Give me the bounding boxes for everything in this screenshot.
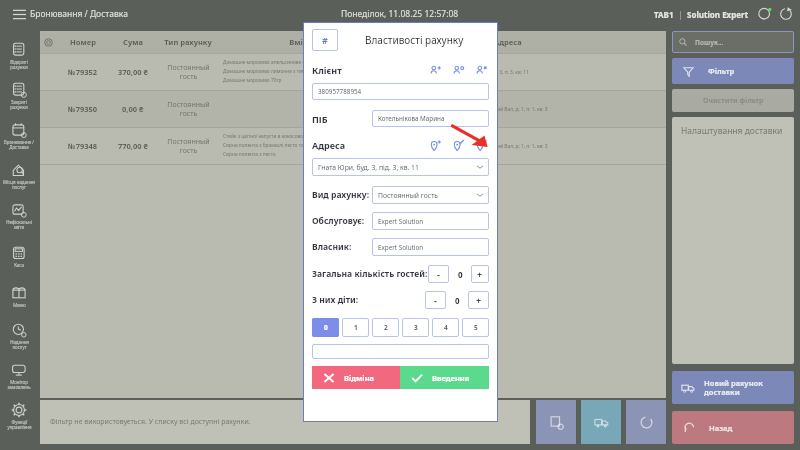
staticText: Гната Юри, буд. 3, під. 3, кв. 11 (318, 163, 477, 172)
staticText: 370,00 ₴ (118, 67, 148, 77)
button[interactable]: Котельнікова Марина (372, 110, 489, 127)
button[interactable]: Функції управління (0, 396, 38, 436)
button[interactable]: Decrease (425, 291, 446, 309)
staticText: Домашнє морозиво апельсинове з чилі 70.. (223, 59, 364, 66)
button[interactable]: 3 (402, 318, 429, 337)
staticText: 2 (384, 323, 388, 332)
staticText: Котельнікова Марина (378, 114, 445, 123)
button[interactable]: Expert Solution (372, 212, 489, 230)
staticText: Expert Solution (378, 243, 424, 252)
staticText: Функції управління (7, 419, 32, 430)
button[interactable]: Add client (427, 62, 443, 78)
staticText: 0 (324, 323, 328, 332)
button[interactable]: Місця надання послуг (0, 156, 38, 196)
staticText: Вид рахунку: (312, 189, 370, 201)
button[interactable]: Refresh (777, 5, 795, 23)
button[interactable]: Відкриті рахунки (0, 36, 38, 76)
staticText: Новенькі Район солом'янський, ул: Яросла… (386, 143, 549, 150)
staticText: Бронювання / Доставка (30, 8, 128, 20)
button[interactable]: Expert Solution (372, 238, 489, 256)
staticText: Район солом'янський, ул: Гната Юри, д: 3… (386, 69, 549, 76)
button[interactable]: Decrease (428, 265, 449, 283)
staticText: Новий рахунок доставки (704, 378, 763, 398)
button[interactable]: Назад (672, 411, 794, 444)
staticText: Введення (432, 373, 470, 383)
button[interactable]: 1 (342, 318, 369, 337)
staticText: Стейк з цвітної капусти в кокосовому соу… (223, 133, 364, 140)
staticText: Нефіскальні звіти (6, 219, 32, 230)
staticText: # (322, 34, 328, 46)
staticText: + (476, 294, 482, 306)
staticText: Власник: (312, 241, 352, 253)
staticText: Понеділок, 11.08.25 12:57:08 (341, 8, 459, 20)
staticText: №79352 (68, 67, 98, 77)
button[interactable]: 4 (432, 318, 459, 337)
staticText: Номер (56, 37, 110, 47)
button[interactable]: Гната Юри, буд. 3, під. 3, кв. 11 (312, 158, 489, 176)
button[interactable]: Закриті рахунки (0, 76, 38, 116)
button[interactable]: №79348 (40, 128, 666, 164)
staticText: Відкриті рахунки (10, 59, 28, 70)
button[interactable]: Новий рахунок доставки (672, 371, 794, 404)
button[interactable]: Menu (6, 1, 32, 27)
button[interactable]: Очистити фільтр (672, 89, 794, 112)
staticText: Постоянный гость (167, 137, 210, 155)
button[interactable]: Delivery (581, 400, 621, 444)
button[interactable]: Remove address (473, 137, 489, 153)
staticText: | (674, 9, 687, 20)
button[interactable]: Введення (400, 366, 489, 389)
staticText: Сирна полента з песто (223, 151, 364, 158)
staticText: + (477, 268, 483, 280)
staticText: З них діти: (312, 294, 359, 306)
button[interactable]: Add address (427, 137, 443, 153)
button[interactable]: Increase (468, 291, 489, 309)
staticText: Властивості рахунку (365, 33, 464, 47)
staticText: 380957788954 (318, 87, 362, 96)
button[interactable]: №79352 (40, 54, 666, 90)
button[interactable]: Каса (0, 236, 38, 276)
staticText: Домашнє морозиво лимонне з тим'яном 7... (223, 68, 364, 75)
staticText: Адреса (312, 139, 346, 151)
staticText: Фільтр не використовується. У списку всі… (50, 417, 251, 427)
staticText: Відміна (344, 373, 375, 383)
button[interactable]: №79350 (40, 91, 666, 127)
button[interactable]: Меню (0, 276, 38, 316)
staticText: 5 (474, 323, 478, 332)
button[interactable]: Пошук... (672, 31, 794, 53)
button[interactable]: Refresh (626, 400, 666, 444)
staticText: Фільтр (708, 66, 735, 76)
staticText: 1,00 (367, 77, 377, 84)
button[interactable]: 0 (312, 318, 339, 337)
button[interactable]: Нефіскальні звіти (0, 196, 38, 236)
button[interactable]: Remove client (473, 62, 489, 78)
button[interactable]: Account number (312, 29, 338, 51)
staticText: - (437, 268, 440, 280)
staticText: 0 (458, 269, 463, 280)
button[interactable]: 2 (372, 318, 399, 337)
staticText: №79350 (68, 104, 98, 114)
button[interactable] (312, 344, 489, 359)
button[interactable]: Print report (536, 400, 576, 444)
button[interactable]: Постоянный гость (372, 186, 489, 204)
button[interactable]: Messages (756, 5, 774, 23)
button[interactable]: Edit address (450, 137, 466, 153)
button[interactable]: Фільтр (672, 58, 794, 84)
button[interactable]: Монітор замовлень (0, 356, 38, 396)
staticText: Місця надання послуг (3, 179, 35, 190)
staticText: - (434, 294, 437, 306)
button[interactable]: 380957788954 (312, 83, 489, 100)
button[interactable]: Find client (450, 62, 466, 78)
button[interactable]: Надання послуг (0, 316, 38, 356)
staticText: Меню (13, 302, 26, 308)
button[interactable]: Бронювання / Доставка (0, 116, 38, 156)
staticText: Домашнє морозиво 70гр (223, 77, 364, 84)
button[interactable]: Відміна (312, 366, 400, 389)
staticText: 3 (414, 323, 418, 332)
button[interactable]: 5 (462, 318, 489, 337)
button[interactable]: Increase (471, 265, 489, 283)
staticText: TAB1 (654, 9, 674, 20)
staticText: Пошук... (695, 38, 724, 47)
